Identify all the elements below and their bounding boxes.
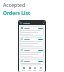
staticText: Orders List bbox=[3, 10, 64, 17]
button[interactable] bbox=[20, 26, 44, 36]
button[interactable]: Alerts bbox=[32, 67, 37, 71]
button[interactable]: Profile bbox=[38, 67, 43, 71]
button[interactable] bbox=[20, 59, 44, 65]
button[interactable] bbox=[20, 37, 44, 47]
staticText: Accepted bbox=[3, 2, 64, 9]
button[interactable] bbox=[20, 48, 44, 58]
button[interactable]: Orders bbox=[27, 67, 32, 71]
button[interactable]: Top app bar bbox=[19, 21, 45, 25]
button[interactable]: Home bbox=[21, 67, 26, 71]
